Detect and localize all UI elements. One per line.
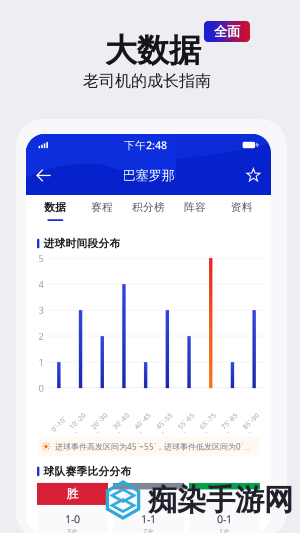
- button[interactable]: 赛程: [79, 195, 125, 224]
- staticText: 老司机的成长指南: [83, 71, 211, 91]
- staticText: 1-0: [65, 512, 80, 526]
- staticText: 0: [38, 382, 43, 394]
- staticText: 5: [38, 252, 43, 264]
- staticText: 1-1: [141, 512, 156, 526]
- staticText: 阵容: [184, 200, 206, 214]
- staticText: 大数据: [105, 31, 201, 70]
- button[interactable]: Back: [36, 163, 62, 187]
- staticText: 40`-45`: [136, 415, 156, 433]
- staticText: 20`-30`: [92, 415, 112, 433]
- button[interactable]: 数据: [32, 195, 79, 224]
- staticText: 75`-85`: [222, 415, 242, 433]
- staticText: 痴染手游网: [148, 482, 293, 518]
- button[interactable]: 资料: [218, 195, 265, 224]
- staticText: 资料: [231, 200, 253, 214]
- staticText: 全面: [214, 23, 240, 40]
- staticText: 1次: [219, 527, 230, 533]
- staticText: 0`-10`: [50, 420, 68, 429]
- staticText: 85`-90`: [244, 415, 264, 433]
- staticText: 4: [38, 278, 43, 290]
- staticText: 0-1: [217, 512, 232, 526]
- staticText: 赛程: [91, 200, 113, 214]
- staticText: 积分榜: [132, 200, 165, 214]
- staticText: 65`-75`: [201, 415, 221, 433]
- staticText: 2次: [143, 527, 154, 533]
- button[interactable]: 积分榜: [125, 195, 172, 224]
- staticText: 胜: [66, 487, 78, 501]
- button[interactable]: 1-1: [113, 483, 184, 533]
- staticText: 30`-40`: [114, 415, 134, 433]
- staticText: 55`-65`: [179, 415, 199, 433]
- staticText: 数据: [44, 200, 66, 214]
- staticText: 下午2:48: [124, 138, 167, 152]
- staticText: 2: [38, 330, 43, 342]
- staticText: 3次: [67, 527, 78, 533]
- staticText: 1: [38, 356, 43, 368]
- button[interactable]: Add to favorites: [235, 163, 261, 187]
- staticText: 10`-20`: [71, 415, 91, 433]
- button[interactable]: 胜: [37, 483, 108, 533]
- staticText: 巴塞罗那: [122, 167, 174, 184]
- button[interactable]: 0-1: [189, 483, 260, 533]
- staticText: 进球事件高发区间为45`~55`，进球事件低发区间为0`~10`: [55, 441, 250, 452]
- staticText: 进球时间段分布: [43, 237, 120, 250]
- staticText: 45`-55`: [157, 415, 177, 433]
- staticText: 3: [38, 304, 43, 316]
- staticText: 球队赛季比分分布: [43, 465, 131, 478]
- button[interactable]: 阵容: [172, 195, 218, 224]
